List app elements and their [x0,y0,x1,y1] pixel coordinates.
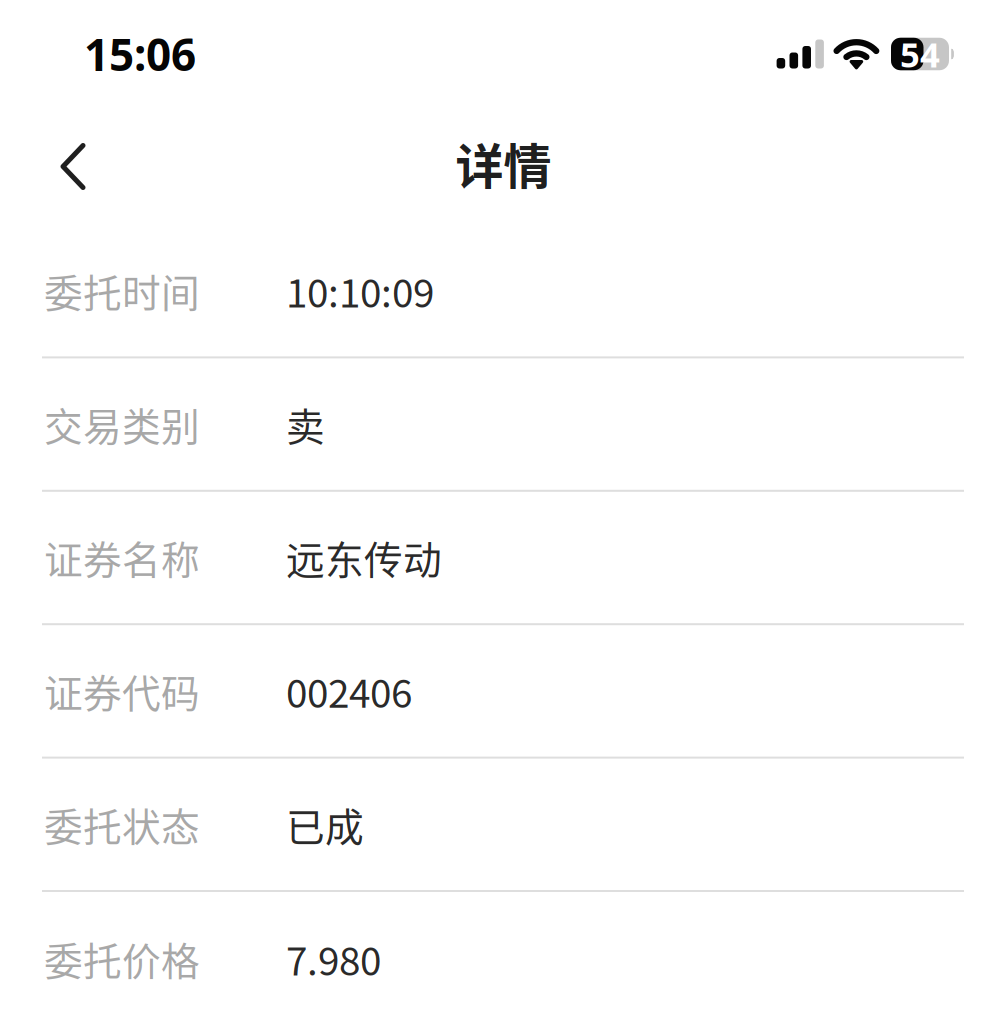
staticText: 002406 [286,663,412,719]
staticText: 委托价格 [44,931,200,987]
staticText: 证券名称 [44,529,200,585]
staticText: 交易类别 [44,396,200,452]
staticText: 15:06 [84,25,196,83]
staticText: 委托时间 [44,263,200,319]
staticText: 已成 [286,796,364,852]
staticText: 委托状态 [44,796,200,852]
staticText: 远东传动 [286,529,442,585]
staticText: 证券代码 [44,663,200,719]
staticText: 54 [900,31,940,77]
staticText: 卖 [286,396,325,452]
staticText: 详情 [455,128,551,198]
button[interactable]: Back [24,111,122,221]
staticText: 10:10:09 [286,263,434,319]
staticText: 7.980 [286,931,381,987]
